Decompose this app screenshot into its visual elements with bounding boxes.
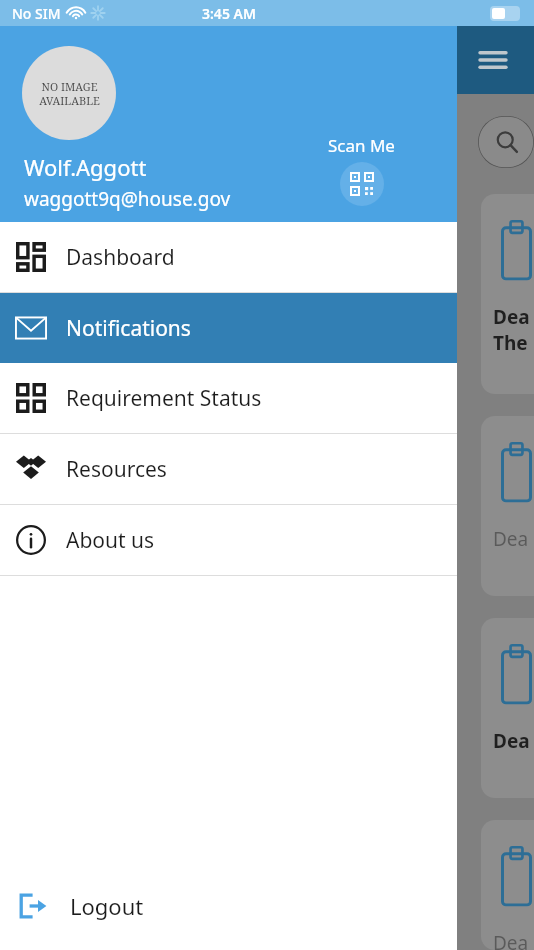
staticText: Dea The [493, 304, 530, 356]
staticText: Dashboard [66, 243, 175, 272]
staticText: About us [66, 526, 155, 555]
button[interactable]: Scan Me QR code [328, 134, 395, 206]
staticText: Wolf.Aggott [24, 152, 147, 182]
button[interactable]: Dea [481, 618, 534, 798]
staticText: Dea [493, 930, 529, 950]
staticText: Dea [493, 526, 529, 552]
button[interactable]: Search [478, 116, 534, 168]
button[interactable]: Dea [481, 820, 534, 950]
button[interactable]: Dea The [481, 194, 534, 394]
staticText: Logout [70, 891, 144, 921]
staticText: Dea [493, 728, 530, 754]
staticText: Scan Me [328, 134, 395, 157]
button[interactable]: Notifications [0, 293, 457, 363]
button[interactable]: Requirement Status [0, 363, 457, 433]
staticText: Resources [66, 455, 167, 484]
button[interactable]: Dashboard [0, 222, 457, 292]
staticText: waggott9q@house.gov [24, 186, 231, 212]
button[interactable]: Logout [0, 876, 457, 936]
button[interactable]: Resources [0, 434, 457, 504]
staticText: Notifications [66, 314, 191, 343]
button[interactable]: Open menu [476, 43, 510, 77]
staticText: NO IMAGE AVAILABLE [39, 79, 100, 108]
button[interactable]: About us [0, 505, 457, 575]
staticText: Requirement Status [66, 384, 262, 413]
button[interactable]: Dea [481, 416, 534, 596]
staticText: No SIM [12, 4, 61, 23]
staticText: 3:45 AM [202, 4, 256, 23]
